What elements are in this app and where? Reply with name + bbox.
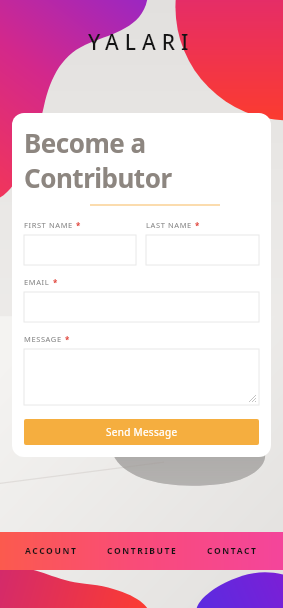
staticText: * <box>53 277 58 288</box>
button[interactable] <box>24 292 259 322</box>
button[interactable] <box>146 235 259 265</box>
button[interactable] <box>24 235 136 265</box>
button[interactable]: CONTRIBUTE <box>103 537 182 565</box>
staticText: CONTACT <box>207 545 258 557</box>
staticText: YALARI <box>88 28 195 57</box>
button[interactable]: Send Message <box>24 419 259 445</box>
staticText: MESSAGE <box>24 334 62 344</box>
staticText: Become a Contributor <box>24 125 259 195</box>
button[interactable]: ACCOUNT <box>21 537 82 565</box>
staticText: * <box>65 334 70 345</box>
staticText: EMAIL <box>24 277 50 287</box>
button[interactable]: CONTACT <box>203 537 262 565</box>
staticText: LAST NAME <box>146 220 192 230</box>
staticText: ACCOUNT <box>25 545 78 557</box>
staticText: Send Message <box>106 425 178 439</box>
staticText: * <box>195 220 200 231</box>
staticText: CONTRIBUTE <box>107 545 178 557</box>
staticText: FIRST NAME <box>24 220 73 230</box>
staticText: * <box>76 220 81 231</box>
